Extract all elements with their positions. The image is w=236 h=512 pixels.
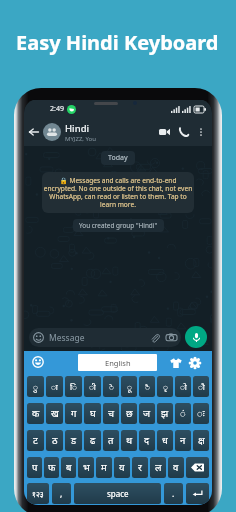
other: Attach: [150, 333, 160, 343]
staticText: ◌ं: [180, 407, 186, 420]
staticText: र: [138, 461, 142, 474]
button[interactable]: ड: [65, 430, 82, 451]
button[interactable]: ◌ू: [121, 376, 137, 397]
staticText: न: [180, 434, 186, 447]
button[interactable]: Video call: [155, 123, 173, 141]
button[interactable]: Back: [27, 125, 41, 139]
button[interactable]: ढ: [84, 430, 101, 451]
button[interactable]: ◌ौ: [193, 376, 209, 397]
button[interactable]: भ: [78, 457, 94, 478]
button[interactable]: १२३: [27, 483, 49, 504]
button[interactable]: space: [74, 483, 161, 504]
button[interactable]: च: [103, 403, 119, 424]
staticText: ख: [51, 407, 59, 420]
staticText: Today: [108, 153, 128, 163]
button[interactable]: र: [132, 457, 148, 478]
staticText: ब: [66, 461, 72, 474]
button[interactable]: Backspace: [186, 457, 209, 478]
staticText: य: [119, 461, 125, 474]
button[interactable]: Emoji: [30, 354, 46, 370]
button[interactable]: Settings: [187, 355, 202, 370]
button[interactable]: ,: [52, 483, 71, 504]
button[interactable]: घ: [84, 403, 101, 424]
button[interactable]: प: [27, 457, 42, 478]
button[interactable]: व: [168, 457, 184, 478]
staticText: ,: [60, 488, 63, 500]
staticText: ल: [155, 461, 162, 474]
button[interactable]: More options: [194, 125, 208, 139]
button[interactable]: ◌ी: [84, 376, 101, 397]
button[interactable]: ◌े: [103, 376, 119, 397]
button[interactable]: ब: [61, 457, 76, 478]
staticText: घ: [90, 407, 96, 420]
staticText: त: [108, 434, 114, 447]
button[interactable]: क: [27, 403, 44, 424]
staticText: ◌ै: [145, 381, 150, 392]
button[interactable]: ◌ः: [193, 403, 209, 424]
staticText: थ: [126, 434, 133, 447]
staticText: ◌ृ: [163, 381, 168, 392]
button[interactable]: ज: [139, 403, 155, 424]
staticText: space: [107, 488, 129, 499]
button[interactable]: .: [164, 483, 183, 504]
button[interactable]: छ: [121, 403, 137, 424]
button[interactable]: ◌ं: [175, 403, 191, 424]
staticText: 2:49: [50, 104, 64, 114]
staticText: 🔒 Messages and calls are end-to-end encr…: [43, 176, 193, 209]
button[interactable]: ◌ै: [139, 376, 155, 397]
staticText: ध: [162, 434, 168, 447]
button[interactable]: Message: [29, 328, 181, 347]
button[interactable]: द: [139, 430, 155, 451]
staticText: ◌ो: [180, 381, 187, 392]
staticText: ड: [71, 434, 77, 447]
button[interactable]: ठ: [46, 430, 63, 451]
staticText: Easy Hindi Keyboard: [16, 29, 219, 56]
button[interactable]: ल: [150, 457, 166, 478]
staticText: You created group "Hindi": [79, 221, 158, 230]
button[interactable]: ◌ि: [65, 376, 82, 397]
button[interactable]: ख: [46, 403, 63, 424]
staticText: छ: [126, 407, 133, 420]
button[interactable]: क्ष: [193, 430, 209, 451]
button[interactable]: Voice call: [175, 123, 193, 141]
staticText: ◌े: [109, 381, 114, 392]
button[interactable]: English: [78, 354, 157, 371]
button[interactable]: फ: [44, 457, 59, 478]
button[interactable]: ध: [157, 430, 173, 451]
button[interactable]: म: [96, 457, 112, 478]
staticText: व: [173, 461, 179, 474]
button[interactable]: Enter: [186, 483, 209, 504]
staticText: Hindi: [65, 122, 90, 135]
other: Camera: [166, 333, 177, 342]
button[interactable]: न: [175, 430, 191, 451]
button[interactable]: ट: [27, 430, 44, 451]
staticText: ठ: [52, 434, 58, 447]
staticText: क्ष: [198, 434, 205, 447]
staticText: ट: [33, 434, 38, 447]
staticText: प: [32, 461, 38, 474]
staticText: ◌ू: [127, 381, 132, 392]
button[interactable]: त: [103, 430, 119, 451]
staticText: द: [144, 434, 150, 447]
staticText: ढ: [90, 434, 96, 447]
staticText: ◌ः: [197, 407, 205, 420]
staticText: .: [172, 488, 175, 500]
staticText: १२३: [32, 489, 44, 499]
button[interactable]: ग: [65, 403, 82, 424]
staticText: क: [32, 407, 40, 420]
button[interactable]: Voice message: [185, 326, 207, 348]
button[interactable]: ◌ृ: [157, 376, 173, 397]
staticText: फ: [48, 461, 56, 474]
button[interactable]: ◌ा: [46, 376, 63, 397]
button[interactable]: थ: [121, 430, 137, 451]
button[interactable]: Theme: [168, 355, 183, 370]
staticText: ◌ु: [33, 381, 38, 392]
staticText: भ: [83, 461, 90, 474]
button[interactable]: य: [114, 457, 130, 478]
button[interactable]: ◌ु: [27, 376, 44, 397]
button[interactable]: ◌ो: [175, 376, 191, 397]
staticText: च: [108, 407, 115, 420]
staticText: ग: [71, 407, 77, 420]
button[interactable]: झ: [157, 403, 173, 424]
staticText: ◌ी: [89, 381, 96, 392]
